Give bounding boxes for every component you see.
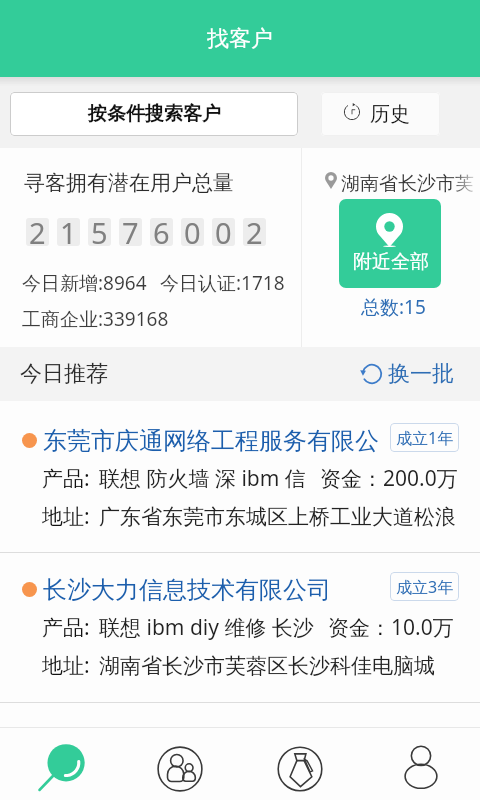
button[interactable]: 客户 (120, 728, 240, 800)
staticText: 今日新增:8964 (22, 270, 147, 296)
button[interactable]: 东莞市庆通网络工程服务有限公 (0, 401, 480, 552)
staticText: 按条件搜索客户 (88, 102, 221, 126)
staticText: 2 (246, 213, 263, 252)
button[interactable]: 附近全部 (339, 199, 441, 288)
staticText: 换一批 (388, 360, 454, 388)
staticText: 7 (122, 213, 139, 252)
staticText: 资金： (328, 615, 391, 641)
button[interactable]: 历史 (321, 92, 440, 136)
staticText: 湖南省长沙市芙蓉区长沙科佳电脑城 (99, 653, 435, 679)
staticText: 历史 (370, 102, 410, 127)
staticText: 地址: (42, 651, 90, 680)
button[interactable]: 商务 (240, 728, 360, 800)
staticText: 产品: (42, 464, 90, 493)
staticText: 今日认证:1718 (160, 270, 285, 296)
staticText: 成立1年 (396, 427, 454, 449)
button[interactable]: 换一批 (360, 360, 454, 388)
staticText: 200.0万 (383, 464, 458, 493)
staticText: 1 (60, 213, 77, 252)
staticText: 长沙大力信息技术有限公司 (43, 575, 331, 605)
staticText: 联想 防火墙 深 ibm 信 (99, 464, 306, 493)
staticText: 产品: (42, 613, 90, 642)
button[interactable]: 长沙大力信息技术有限公司 (0, 553, 480, 702)
button[interactable]: 我的 (360, 728, 480, 800)
staticText: 附近全部 (353, 250, 429, 274)
button[interactable]: 搜索 (0, 728, 120, 800)
staticText: 10.0万 (391, 613, 454, 642)
staticText: 东莞市庆通网络工程服务有限公 (43, 426, 379, 456)
staticText: 6 (153, 213, 170, 252)
staticText: 联想 ibm diy 维修 长沙 (99, 613, 314, 642)
staticText: 0 (184, 213, 201, 252)
button[interactable]: 按条件搜索客户 (10, 92, 298, 136)
staticText: 5 (91, 213, 108, 252)
staticText: 今日推荐 (20, 360, 108, 388)
staticText: 成立3年 (396, 576, 454, 598)
staticText: 0 (215, 213, 232, 252)
staticText: 广东省东莞市东城区上桥工业大道松浪 (99, 504, 456, 530)
staticText: 寻客拥有潜在用户总量 (24, 170, 234, 196)
staticText: 资金： (320, 466, 383, 492)
staticText: 找客户 (207, 25, 273, 53)
staticText: 地址: (42, 502, 90, 531)
staticText: 总数:15 (361, 294, 426, 320)
staticText: 2 (29, 213, 46, 252)
staticText: 湖南省长沙市芙 (341, 172, 474, 196)
staticText: 工商企业:339168 (22, 306, 169, 332)
